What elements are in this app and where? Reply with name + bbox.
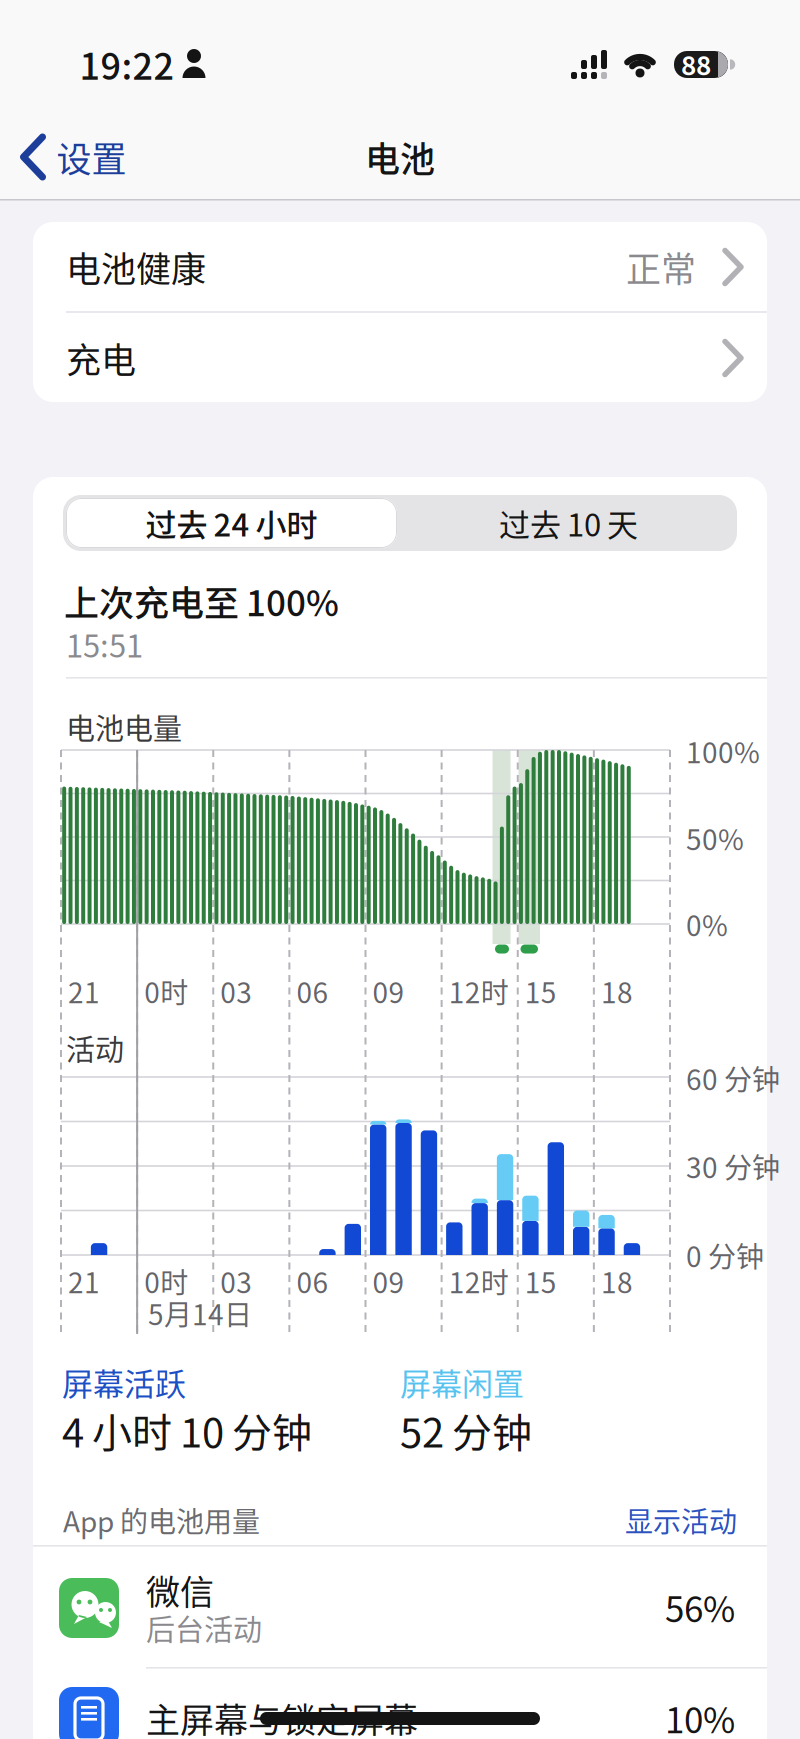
staticText: 56% — [665, 1582, 735, 1632]
staticText: 88 — [681, 46, 711, 82]
staticText: 微信 — [146, 1566, 214, 1614]
staticText: 屏幕闲置 — [400, 1360, 524, 1404]
staticText: 15 — [525, 1261, 557, 1301]
button[interactable]: 充电 — [33, 313, 767, 402]
staticText: 4 小时 10 分钟 — [62, 1402, 312, 1458]
staticText: 后台活动 — [146, 1607, 262, 1648]
staticText: 06 — [296, 971, 328, 1011]
staticText: 18 — [601, 1261, 633, 1301]
staticText: 0时 — [144, 1261, 188, 1301]
staticText: 过去 10 天 — [499, 501, 638, 545]
staticText: 12时 — [449, 1261, 509, 1301]
staticText: 主屏幕与锁定屏幕 — [146, 1694, 418, 1739]
staticText: 50% — [686, 818, 744, 858]
staticText: 30 分钟 — [686, 1146, 780, 1186]
staticText: 60 分钟 — [686, 1058, 780, 1098]
staticText: 电池 — [365, 132, 435, 182]
staticText: 0 分钟 — [686, 1235, 764, 1275]
staticText: 正常 — [626, 242, 696, 292]
staticText: 设置 — [56, 132, 126, 182]
staticText: 12时 — [449, 971, 509, 1011]
staticText: 充电 — [66, 333, 136, 383]
staticText: 活动 — [66, 1027, 124, 1068]
staticText: 18 — [601, 971, 633, 1011]
staticText: 21 — [68, 1261, 100, 1301]
staticText: 52 分钟 — [400, 1402, 532, 1458]
staticText: 03 — [220, 971, 252, 1011]
staticText: 19:22 — [79, 39, 174, 89]
staticText: 09 — [372, 1261, 404, 1301]
staticText: 5月14日 — [148, 1293, 252, 1333]
button[interactable]: 显示活动 — [625, 1500, 737, 1540]
staticText: 0时 — [144, 971, 188, 1011]
staticText: 09 — [372, 971, 404, 1011]
staticText: 15:51 — [66, 622, 143, 666]
button[interactable]: 电池健康 — [33, 222, 767, 311]
button[interactable]: 主屏幕与锁定屏幕 — [33, 1662, 767, 1739]
staticText: 06 — [296, 1261, 328, 1301]
staticText: 100% — [686, 731, 760, 771]
button[interactable]: 过去 24 小时 — [66, 498, 397, 548]
button[interactable]: 微信 — [33, 1553, 767, 1663]
staticText: 21 — [68, 971, 100, 1011]
staticText: 显示活动 — [625, 1500, 737, 1540]
staticText: 03 — [220, 1261, 252, 1301]
staticText: 电池电量 — [66, 706, 182, 747]
button[interactable]: 设置 — [19, 131, 126, 183]
staticText: 电池健康 — [66, 242, 206, 292]
button[interactable]: 过去 10 天 — [403, 498, 734, 548]
staticText: 10% — [665, 1693, 735, 1739]
staticText: App 的电池用量 — [63, 1500, 260, 1540]
staticText: 0% — [686, 904, 728, 944]
staticText: 上次充电至 100% — [64, 576, 339, 626]
staticText: 15 — [525, 971, 557, 1011]
staticText: 屏幕活跃 — [62, 1360, 186, 1404]
staticText: 过去 24 小时 — [145, 501, 317, 545]
